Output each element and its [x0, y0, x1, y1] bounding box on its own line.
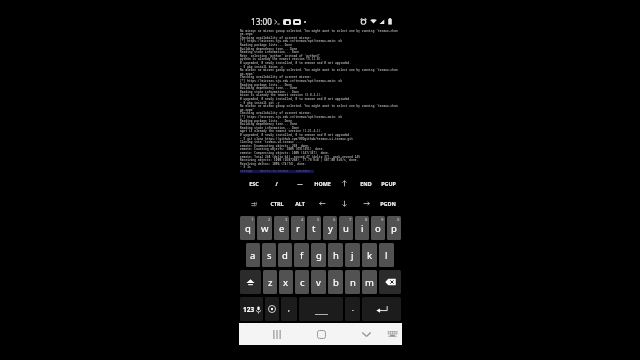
staticText: CTRL — [270, 200, 284, 207]
staticText: 3 — [285, 217, 288, 223]
button[interactable]: . — [345, 297, 360, 321]
staticText: Reading state information... Done — [240, 50, 300, 54]
button[interactable]: HOME — [311, 173, 333, 194]
staticText: Reading package lists... Done — [240, 43, 292, 47]
staticText: i — [361, 222, 364, 235]
staticText: [*] https://mirrors.nju.edu.cn/termux/ap… — [240, 115, 343, 119]
button[interactable]: c — [295, 270, 309, 294]
button[interactable]: q — [240, 216, 255, 240]
button[interactable]: v — [311, 270, 326, 294]
button[interactable]: ESC — [242, 173, 265, 194]
button[interactable]: x — [279, 270, 293, 294]
staticText: Checking availability of current mirror: — [240, 36, 312, 40]
button[interactable]: r — [291, 216, 305, 240]
staticText: k — [367, 249, 373, 262]
staticText: Resolving deltas: 100% (74/74), done. — [240, 162, 307, 166]
button[interactable]: Enter — [362, 297, 401, 321]
button[interactable]: Recent apps — [267, 323, 287, 345]
button[interactable]: ALT — [288, 194, 311, 213]
staticText: o — [375, 222, 381, 235]
button[interactable]: f — [294, 243, 309, 267]
staticText: d — [282, 249, 288, 262]
staticText: w — [261, 222, 269, 235]
button[interactable]: l — [379, 243, 394, 267]
button[interactable]: CTRL — [265, 194, 288, 213]
button[interactable]: PGUP — [377, 173, 399, 194]
staticText: — — [297, 180, 303, 187]
button[interactable]: Change keyboard — [384, 323, 401, 345]
button[interactable] — [355, 194, 377, 213]
staticText: c — [300, 276, 305, 289]
button[interactable]: 123 — [240, 297, 263, 321]
staticText: Cloning into 'termux-ui-termux'... — [240, 140, 301, 144]
staticText: remote: Compressing objects: 100% (347/3… — [240, 151, 330, 155]
button[interactable]: a — [246, 243, 260, 267]
button[interactable]: — — [288, 173, 311, 194]
button[interactable]: Space — [299, 297, 343, 321]
button[interactable]: , — [281, 297, 297, 321]
staticText: m — [365, 276, 374, 289]
staticText: ~ $ pkg install bison -y — [240, 65, 284, 69]
staticText: r — [296, 222, 300, 235]
button[interactable]: Emoji — [265, 297, 279, 321]
staticText: 5 — [317, 217, 320, 223]
staticText: u — [343, 222, 349, 235]
button[interactable]: Hide keyboard — [356, 323, 376, 345]
staticText: ge-repo' — [240, 72, 255, 76]
button[interactable]: Shift — [240, 270, 261, 294]
button[interactable]: w — [257, 216, 272, 240]
staticText: ~ $ pkg install git -y — [240, 101, 280, 105]
button[interactable] — [311, 194, 333, 213]
staticText: Checking availability of current mirror: — [240, 111, 312, 115]
staticText: Reading package lists... Done — [240, 83, 292, 87]
staticText: s — [267, 249, 272, 262]
staticText: 8 — [365, 217, 368, 223]
staticText: storage ubuntu-in-termux subvideo — [240, 169, 310, 173]
staticText: bison is already the newest version (3.8… — [240, 93, 323, 97]
staticText: ge-repo' — [240, 32, 255, 36]
button[interactable]: m — [362, 270, 377, 294]
button[interactable]: y — [323, 216, 337, 240]
staticText: Building dependency tree... Done — [240, 86, 298, 90]
button[interactable]: s — [262, 243, 276, 267]
staticText: ge-repo' — [240, 108, 255, 112]
staticText: Reading state information... Done — [240, 90, 300, 94]
staticText: 0 upgraded, 0 newly installed, 0 to remo… — [240, 133, 352, 137]
staticText: t — [312, 222, 316, 235]
staticText: , — [288, 304, 290, 314]
button[interactable]: d — [278, 243, 292, 267]
button[interactable]: g — [311, 243, 326, 267]
button[interactable]: u — [339, 216, 353, 240]
staticText: wget is already the newest version (1.21… — [240, 129, 323, 133]
button[interactable]: b — [328, 270, 343, 294]
button[interactable]: k — [362, 243, 377, 267]
staticText: HOME — [314, 180, 331, 187]
staticText: PGDN — [380, 200, 396, 207]
staticText: x — [283, 276, 289, 289]
button[interactable]: Backspace — [379, 270, 401, 294]
button[interactable]: Home — [311, 323, 331, 345]
staticText: j — [351, 249, 354, 262]
button[interactable]: o — [371, 216, 385, 240]
button[interactable]: i — [355, 216, 369, 240]
button[interactable] — [242, 194, 265, 213]
staticText: 9 — [381, 217, 384, 223]
button[interactable]: p — [387, 216, 401, 240]
button[interactable]: e — [274, 216, 289, 240]
button[interactable]: / — [265, 173, 288, 194]
button[interactable]: n — [345, 270, 360, 294]
button[interactable]: z — [263, 270, 277, 294]
staticText: ALT — [295, 200, 305, 207]
staticText: f — [300, 249, 304, 262]
button[interactable]: t — [307, 216, 321, 240]
staticText: ~ $ ls — [240, 165, 251, 169]
button[interactable]: PGDN — [377, 194, 399, 213]
staticText: python is already the newest version (3.… — [240, 57, 323, 61]
button[interactable] — [333, 173, 355, 194]
button[interactable]: END — [355, 173, 377, 194]
button[interactable] — [333, 194, 355, 213]
staticText: Building dependency tree... Done — [240, 47, 298, 51]
staticText: 13:00 — [251, 16, 272, 27]
button[interactable]: j — [345, 243, 360, 267]
button[interactable]: h — [328, 243, 343, 267]
